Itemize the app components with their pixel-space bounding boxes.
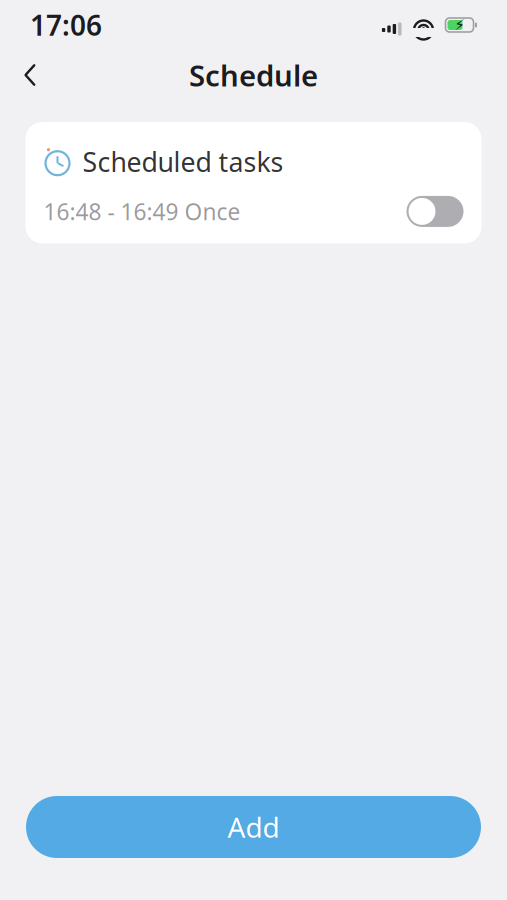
staticText: Scheduled tasks [82, 144, 283, 179]
staticText: Add [227, 808, 279, 846]
button[interactable]: Back [8, 53, 52, 97]
button[interactable]: 16:48 - 16:49 Once [25, 179, 481, 243]
staticText: Schedule [189, 55, 318, 94]
staticText: 16:48 - 16:49 Once [43, 196, 240, 226]
staticText: ⚡︎ [454, 17, 464, 33]
staticText: 17:06 [30, 6, 102, 44]
button[interactable]: Add [26, 796, 481, 858]
